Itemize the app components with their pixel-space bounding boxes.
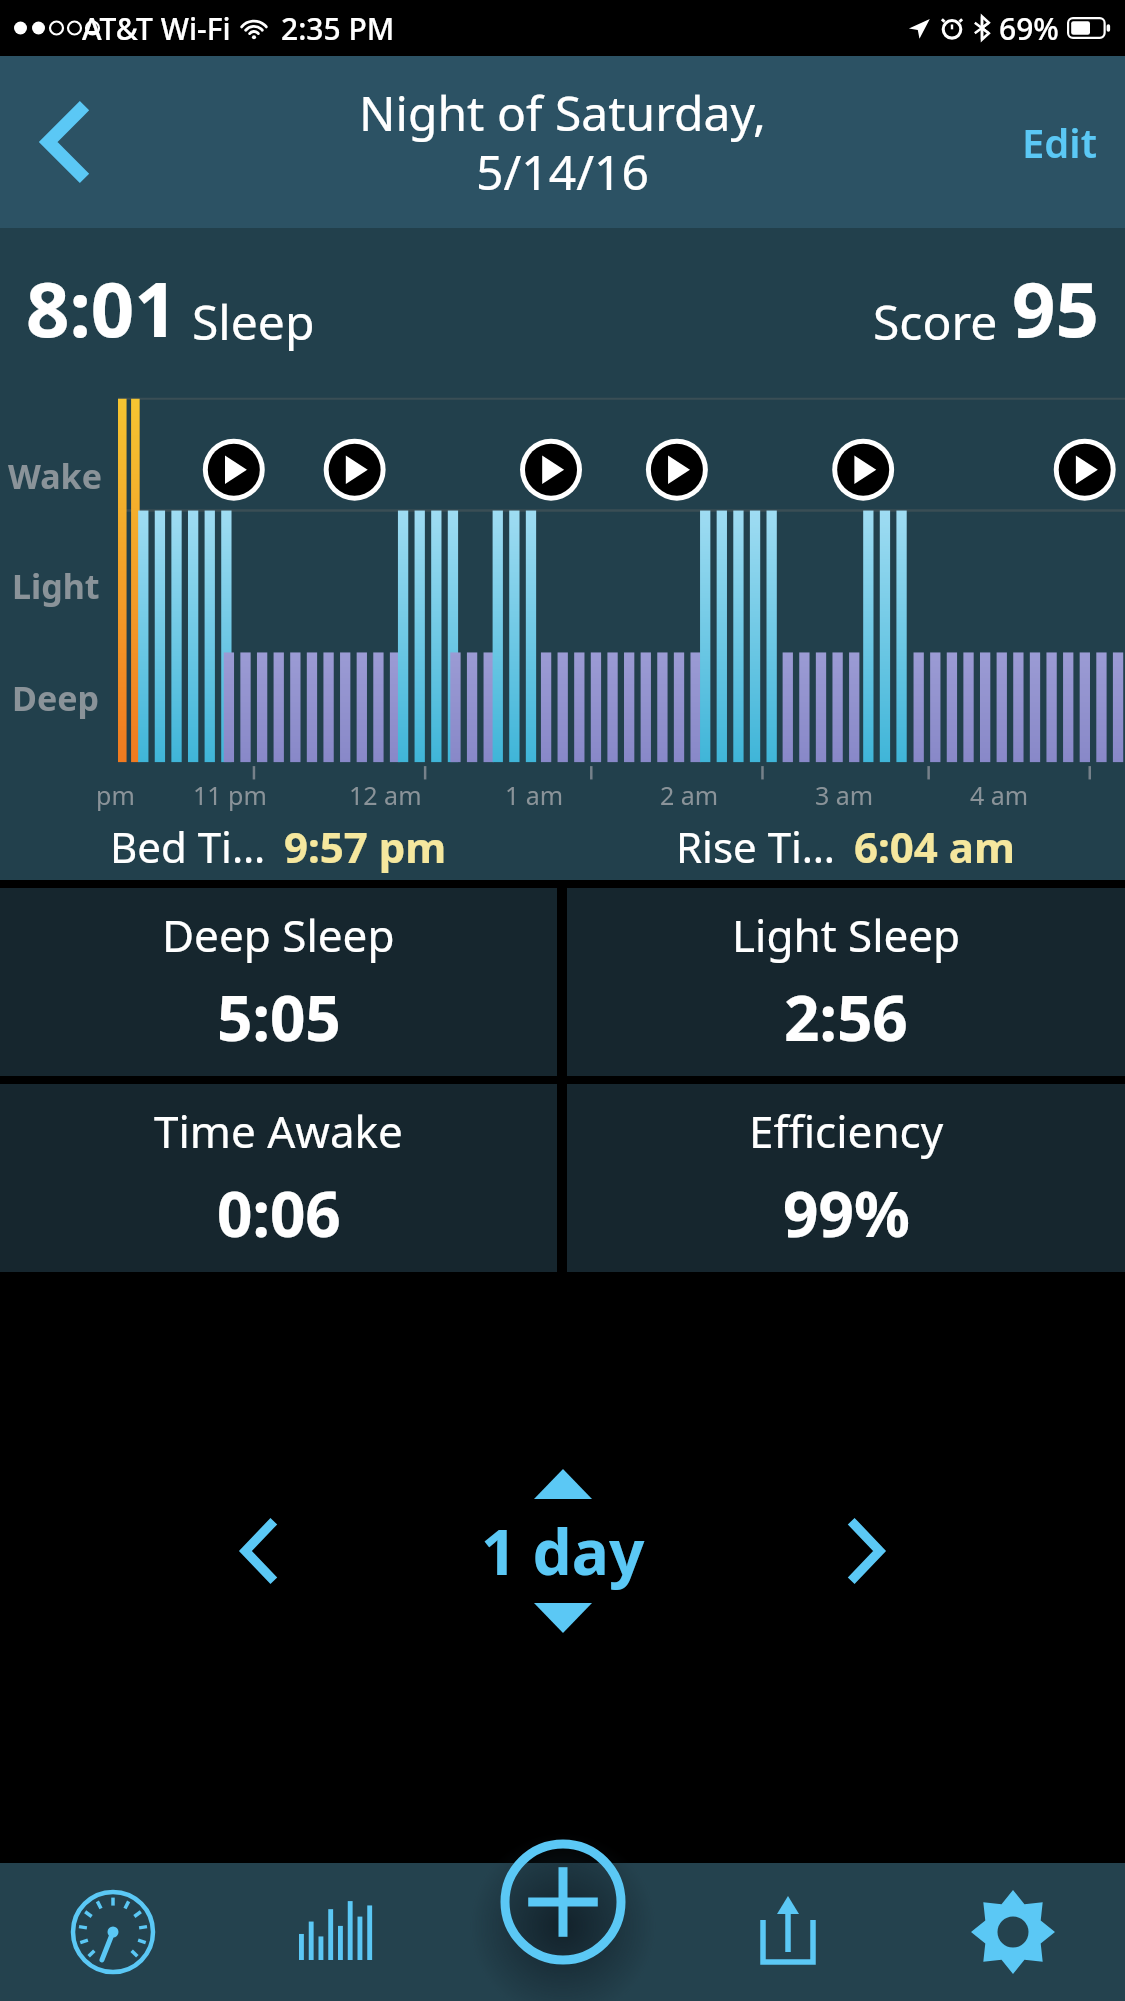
staticText: Edit [1022,115,1097,169]
button[interactable]: Time Awake [0,1084,557,1272]
staticText: Bed Ti… [110,818,266,875]
staticText: 3 am [815,778,970,812]
staticText: 69% [999,8,1059,49]
button[interactable]: Settings [900,1863,1125,2001]
staticText: 2:35 PM [281,8,395,49]
staticText: 1 day [481,1509,645,1593]
staticText: Efficiency [749,1101,944,1161]
button[interactable]: 1 day [481,1469,645,1633]
button[interactable]: Edit [1014,105,1105,179]
button[interactable]: Efficiency [567,1084,1125,1272]
staticText: 2 am [660,778,815,812]
button[interactable]: Trends [225,1863,450,2001]
staticText: 5:05 [217,975,341,1059]
staticText: 9:57 pm [284,818,447,875]
staticText: 0:06 [217,1171,341,1255]
staticText: Score [873,289,998,354]
staticText: Night of Saturday, 5/14/16 [359,80,766,204]
button[interactable] [0,388,1125,818]
button[interactable]: Share [675,1863,900,2001]
staticText: AT&T Wi-Fi [82,8,231,49]
button[interactable]: Previous [210,1503,306,1599]
button[interactable]: Next [819,1503,915,1599]
staticText: Time Awake [154,1101,403,1161]
button[interactable]: Add [488,1831,638,1973]
staticText: Rise Ti… [676,818,836,875]
staticText: 12 am [349,778,505,812]
staticText: pm [96,778,193,812]
button[interactable]: Dashboard [0,1863,225,2001]
button[interactable]: Light Sleep [567,888,1125,1076]
staticText: Light Sleep [732,905,961,965]
button[interactable]: Deep Sleep [0,888,557,1076]
staticText: 8:01 [26,256,178,360]
staticText: 11 pm [193,778,349,812]
staticText: Wake [8,453,102,499]
staticText: 4 am [970,778,1125,812]
staticText: 2:56 [784,975,908,1059]
staticText: 99% [783,1171,910,1255]
staticText: 95 [1012,256,1099,360]
staticText: Deep [12,675,99,721]
staticText: Sleep [192,289,315,354]
staticText: 1 am [505,778,660,812]
staticText: Light [12,563,100,609]
staticText: Deep Sleep [162,905,395,965]
button[interactable]: Back [16,82,112,202]
staticText: 6:04 am [854,818,1015,875]
